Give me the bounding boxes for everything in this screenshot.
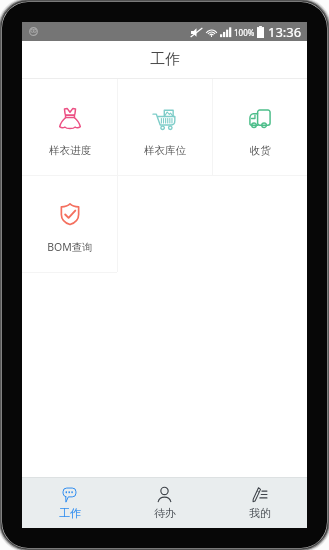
button[interactable]: 待办: [117, 478, 212, 528]
staticText: 待办: [154, 506, 176, 520]
button[interactable]: 收货: [213, 79, 307, 175]
button[interactable]: BOM查询: [22, 176, 117, 272]
staticText: 我的: [249, 506, 271, 520]
button[interactable]: 工作: [22, 478, 117, 528]
staticText: 收货: [250, 144, 271, 157]
staticText: 工作: [59, 506, 81, 520]
staticText: 工作: [150, 50, 180, 69]
staticText: BOM查询: [47, 240, 93, 254]
button[interactable]: 我的: [212, 478, 307, 528]
staticText: 样衣库位: [144, 144, 186, 157]
button[interactable]: 样衣库位: [118, 79, 212, 175]
staticText: 100%: [234, 27, 255, 38]
staticText: 样衣进度: [49, 144, 91, 157]
staticText: 13:36: [268, 23, 302, 41]
button[interactable]: 样衣进度: [22, 79, 117, 175]
